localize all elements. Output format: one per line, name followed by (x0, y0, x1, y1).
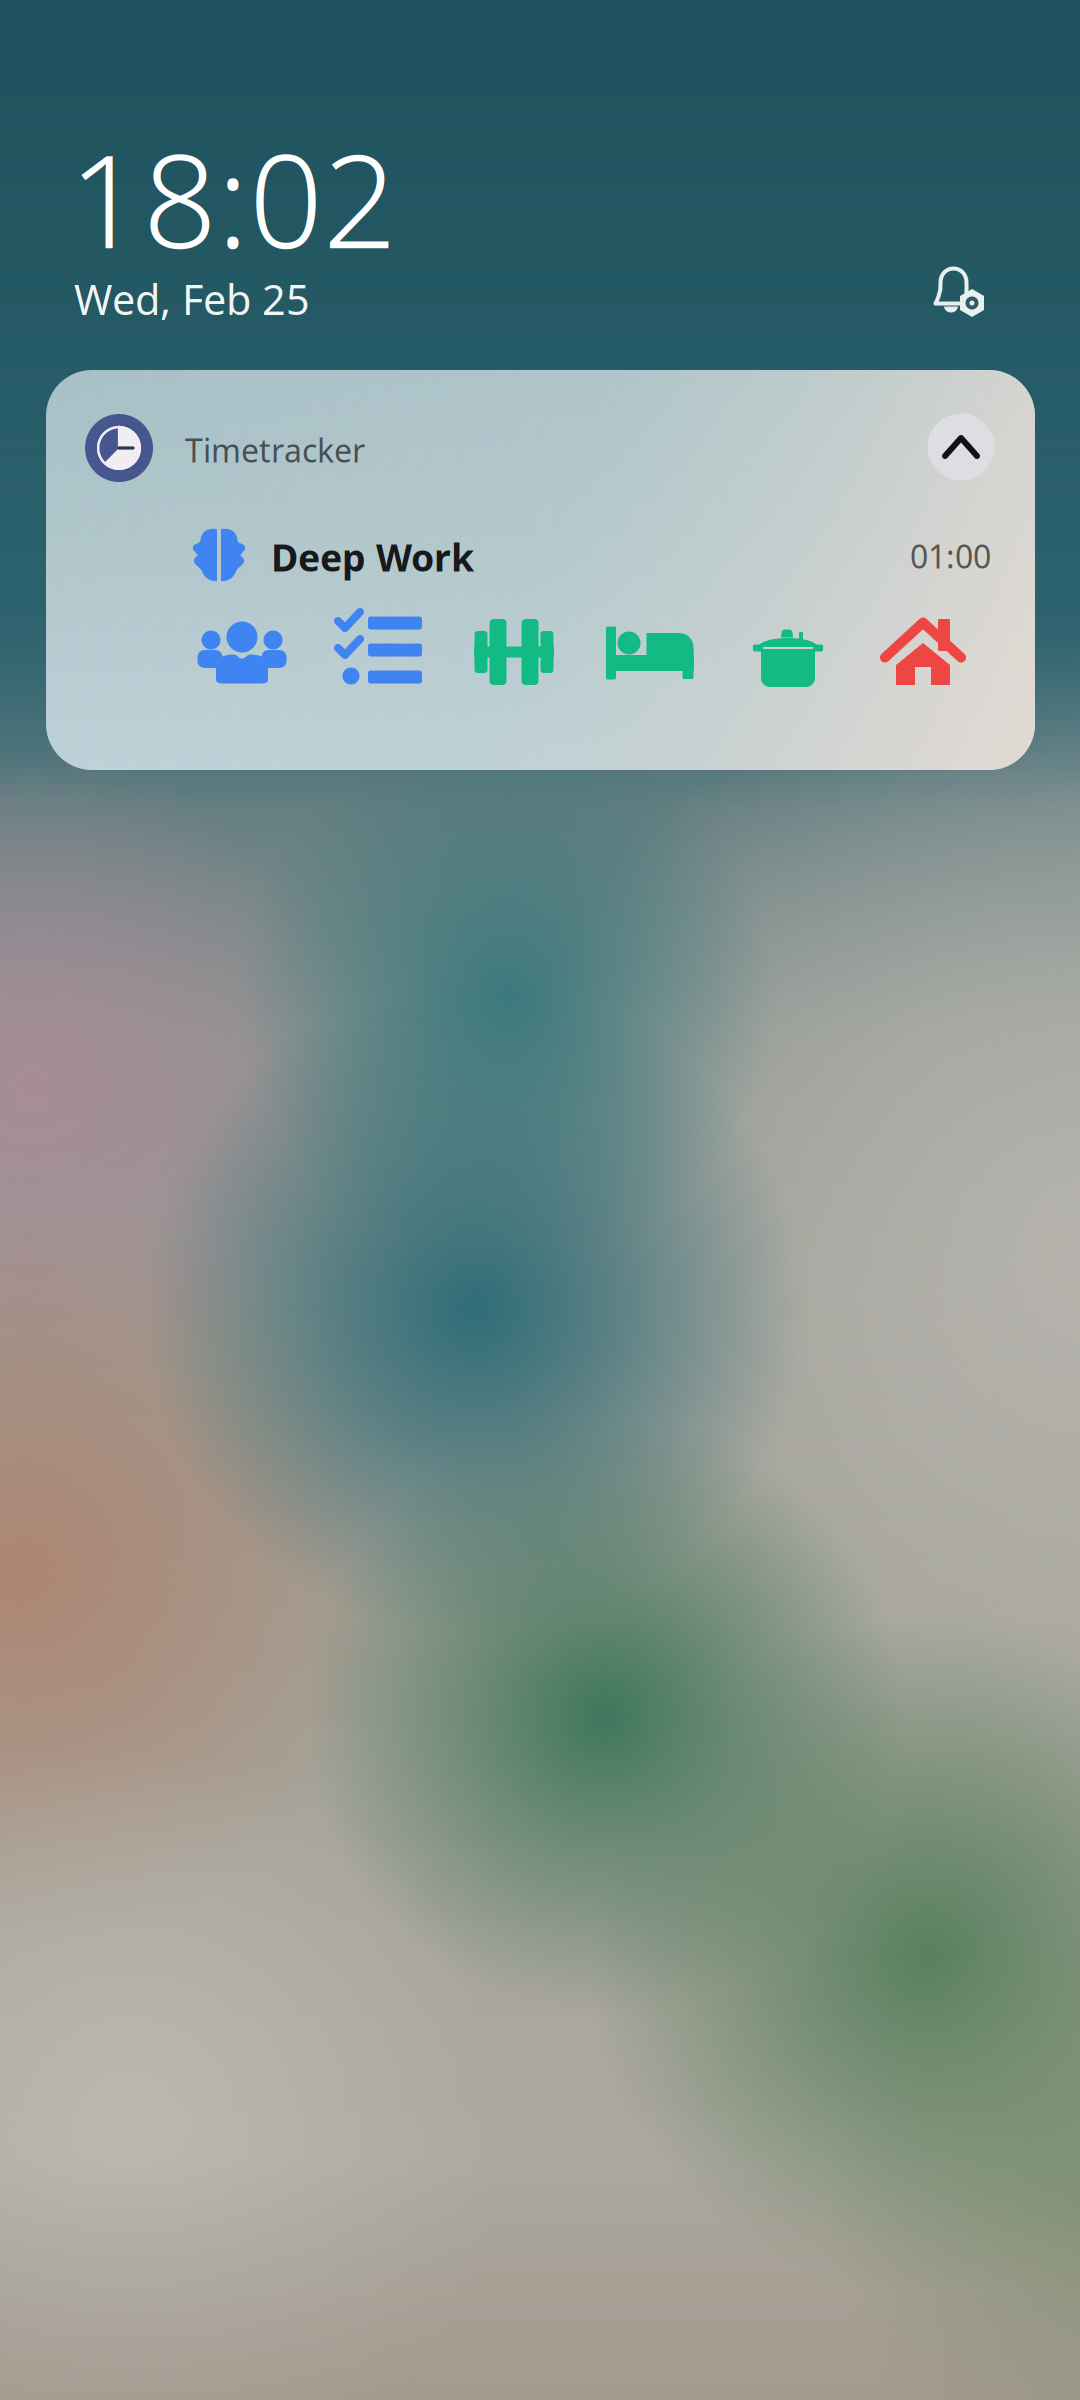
staticText: Timetracker (185, 429, 365, 471)
staticText: 18:02 (69, 112, 397, 284)
staticText: Wed, Feb 25 (74, 272, 310, 326)
staticText: 01:00 (910, 535, 991, 577)
button[interactable]: Timetracker (46, 370, 1035, 770)
staticText: Deep Work (271, 532, 474, 582)
button[interactable]: Notification settings (912, 243, 1008, 339)
button[interactable]: Collapse notification (927, 413, 994, 480)
